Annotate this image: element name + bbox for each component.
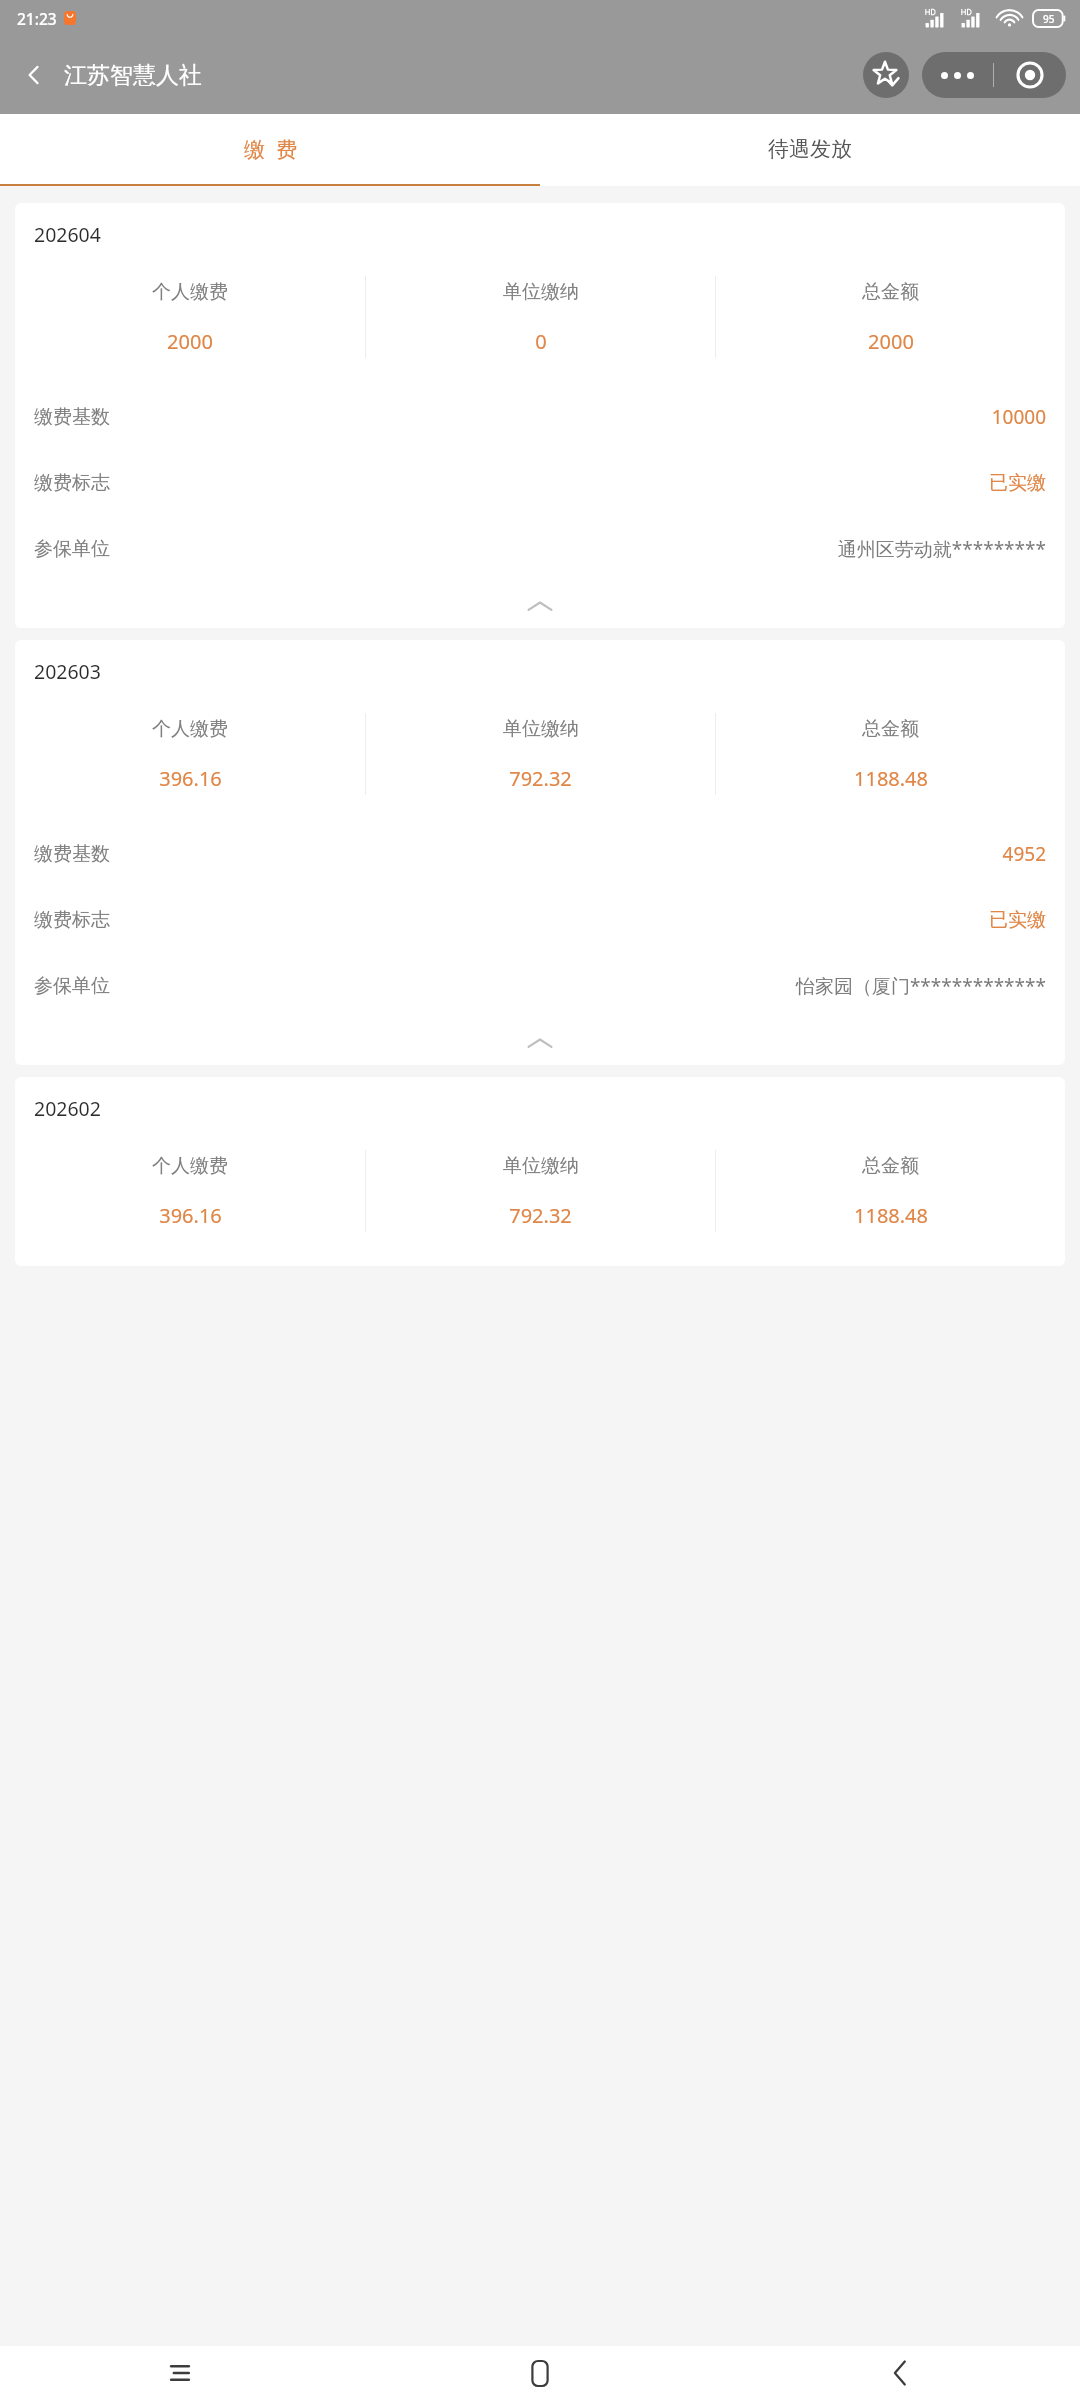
button[interactable]: 202604	[15, 203, 1065, 628]
staticText: 0	[535, 328, 547, 355]
staticText: 总金额	[862, 717, 919, 741]
staticText: 总金额	[862, 1154, 919, 1178]
staticText: 2000	[868, 328, 914, 355]
button[interactable]: Favourite	[863, 52, 909, 98]
staticText: 95	[1043, 12, 1055, 26]
staticText: 1188.48	[854, 1202, 928, 1229]
button[interactable]: Back	[720, 2346, 1080, 2400]
staticText: 个人缴费	[152, 280, 228, 304]
staticText: 缴费基数	[34, 405, 110, 429]
staticText: 个人缴费	[152, 717, 228, 741]
staticText: 参保单位	[34, 974, 110, 998]
staticText: 1188.48	[854, 765, 928, 792]
staticText: 396.16	[159, 765, 222, 792]
staticText: 4952	[1002, 841, 1046, 867]
staticText: 总金额	[862, 280, 919, 304]
button[interactable]: 待遇发放	[540, 114, 1080, 184]
staticText: 202603	[34, 658, 101, 685]
staticText: 单位缴纳	[503, 280, 579, 304]
button[interactable]: Close mini program	[994, 52, 1066, 98]
staticText: 已实缴	[989, 471, 1046, 495]
staticText: 202602	[34, 1095, 101, 1122]
button[interactable]: Back	[12, 53, 56, 97]
button[interactable]: 202603	[15, 640, 1065, 1065]
staticText: 792.32	[509, 1202, 572, 1229]
button[interactable]: 202602	[15, 1077, 1065, 1266]
staticText: 参保单位	[34, 537, 110, 561]
staticText: 792.32	[509, 765, 572, 792]
staticText: 个人缴费	[152, 1154, 228, 1178]
staticText: 缴费标志	[34, 471, 110, 495]
staticText: 202604	[34, 221, 101, 248]
button[interactable]: Home	[360, 2346, 720, 2400]
staticText: 缴费标志	[34, 908, 110, 932]
button[interactable]: 缴 费	[0, 114, 540, 184]
staticText: 怡家园（厦门*************	[795, 973, 1046, 999]
staticText: 10000	[991, 404, 1046, 430]
staticText: 待遇发放	[768, 136, 852, 162]
button[interactable]: Recent apps	[0, 2346, 360, 2400]
staticText: 通州区劳动就*********	[837, 536, 1046, 562]
staticText: 缴 费	[244, 135, 297, 164]
button[interactable]: More options	[922, 52, 993, 98]
staticText: 396.16	[159, 1202, 222, 1229]
staticText: 21:23	[17, 8, 57, 29]
staticText: 单位缴纳	[503, 717, 579, 741]
staticText: 江苏智慧人社	[64, 61, 202, 90]
staticText: 单位缴纳	[503, 1154, 579, 1178]
staticText: 缴费基数	[34, 842, 110, 866]
staticText: 已实缴	[989, 908, 1046, 932]
staticText: 2000	[167, 328, 213, 355]
